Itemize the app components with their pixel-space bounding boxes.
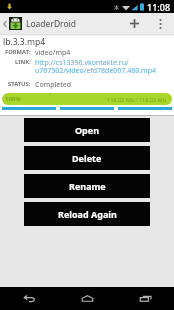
staticText: Reload Again: [58, 208, 117, 220]
button[interactable]: More options: [147, 13, 174, 34]
button[interactable]: Recent apps: [116, 287, 174, 310]
button[interactable]: Open: [24, 118, 150, 142]
button[interactable]: Rename: [24, 174, 150, 198]
button[interactable]: Add download: [122, 13, 147, 34]
button[interactable]: Home: [58, 287, 116, 310]
staticText: FORMAT:: [5, 48, 31, 56]
staticText: lb.3.3.mp4: [3, 36, 46, 48]
staticText: http://cs13396.vkontakte.ru/: [35, 58, 129, 68]
staticText: 11:08: [147, 1, 171, 13]
staticText: Delete: [72, 152, 102, 164]
staticText: Rename: [69, 180, 106, 192]
staticText: Completed: [35, 80, 72, 90]
staticText: Open: [75, 124, 100, 136]
staticText: LoaderDroid: [26, 18, 77, 30]
button[interactable]: Delete: [24, 146, 150, 170]
staticText: STATUS:: [8, 80, 31, 88]
button[interactable]: Back: [0, 287, 58, 310]
staticText: 100%: [5, 95, 21, 103]
staticText: LINK:: [15, 58, 31, 66]
staticText: u767502/video/efd78de007.480.mp4: [35, 66, 156, 76]
button[interactable]: Navigate up: [2, 17, 22, 30]
button[interactable]: Reload Again: [24, 202, 150, 226]
staticText: video/mp4: [35, 48, 71, 58]
staticText: 118.02 Mb / 118.02 Mb: [107, 96, 166, 103]
